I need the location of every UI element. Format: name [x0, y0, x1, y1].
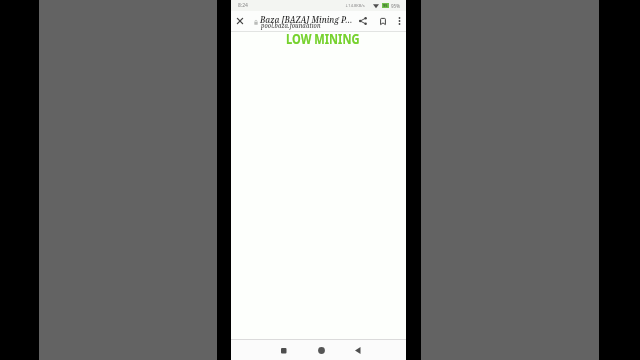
- staticText: LOW MINING: [286, 28, 360, 48]
- staticText: 95: [383, 3, 388, 8]
- button[interactable]: [376, 14, 390, 28]
- staticText: 95%: [391, 3, 400, 9]
- button[interactable]: [350, 343, 365, 358]
- staticText: pool.baza.foundation: [261, 21, 321, 30]
- staticText: ↓14.8KB/s: [345, 3, 365, 8]
- button[interactable]: [356, 14, 370, 28]
- staticText: 8:24: [238, 2, 248, 9]
- button[interactable]: [233, 14, 247, 28]
- button[interactable]: [393, 14, 406, 28]
- button[interactable]: [276, 343, 291, 358]
- staticText: Baza [BAZA] Mining P…: [260, 13, 353, 26]
- button[interactable]: [314, 343, 329, 358]
